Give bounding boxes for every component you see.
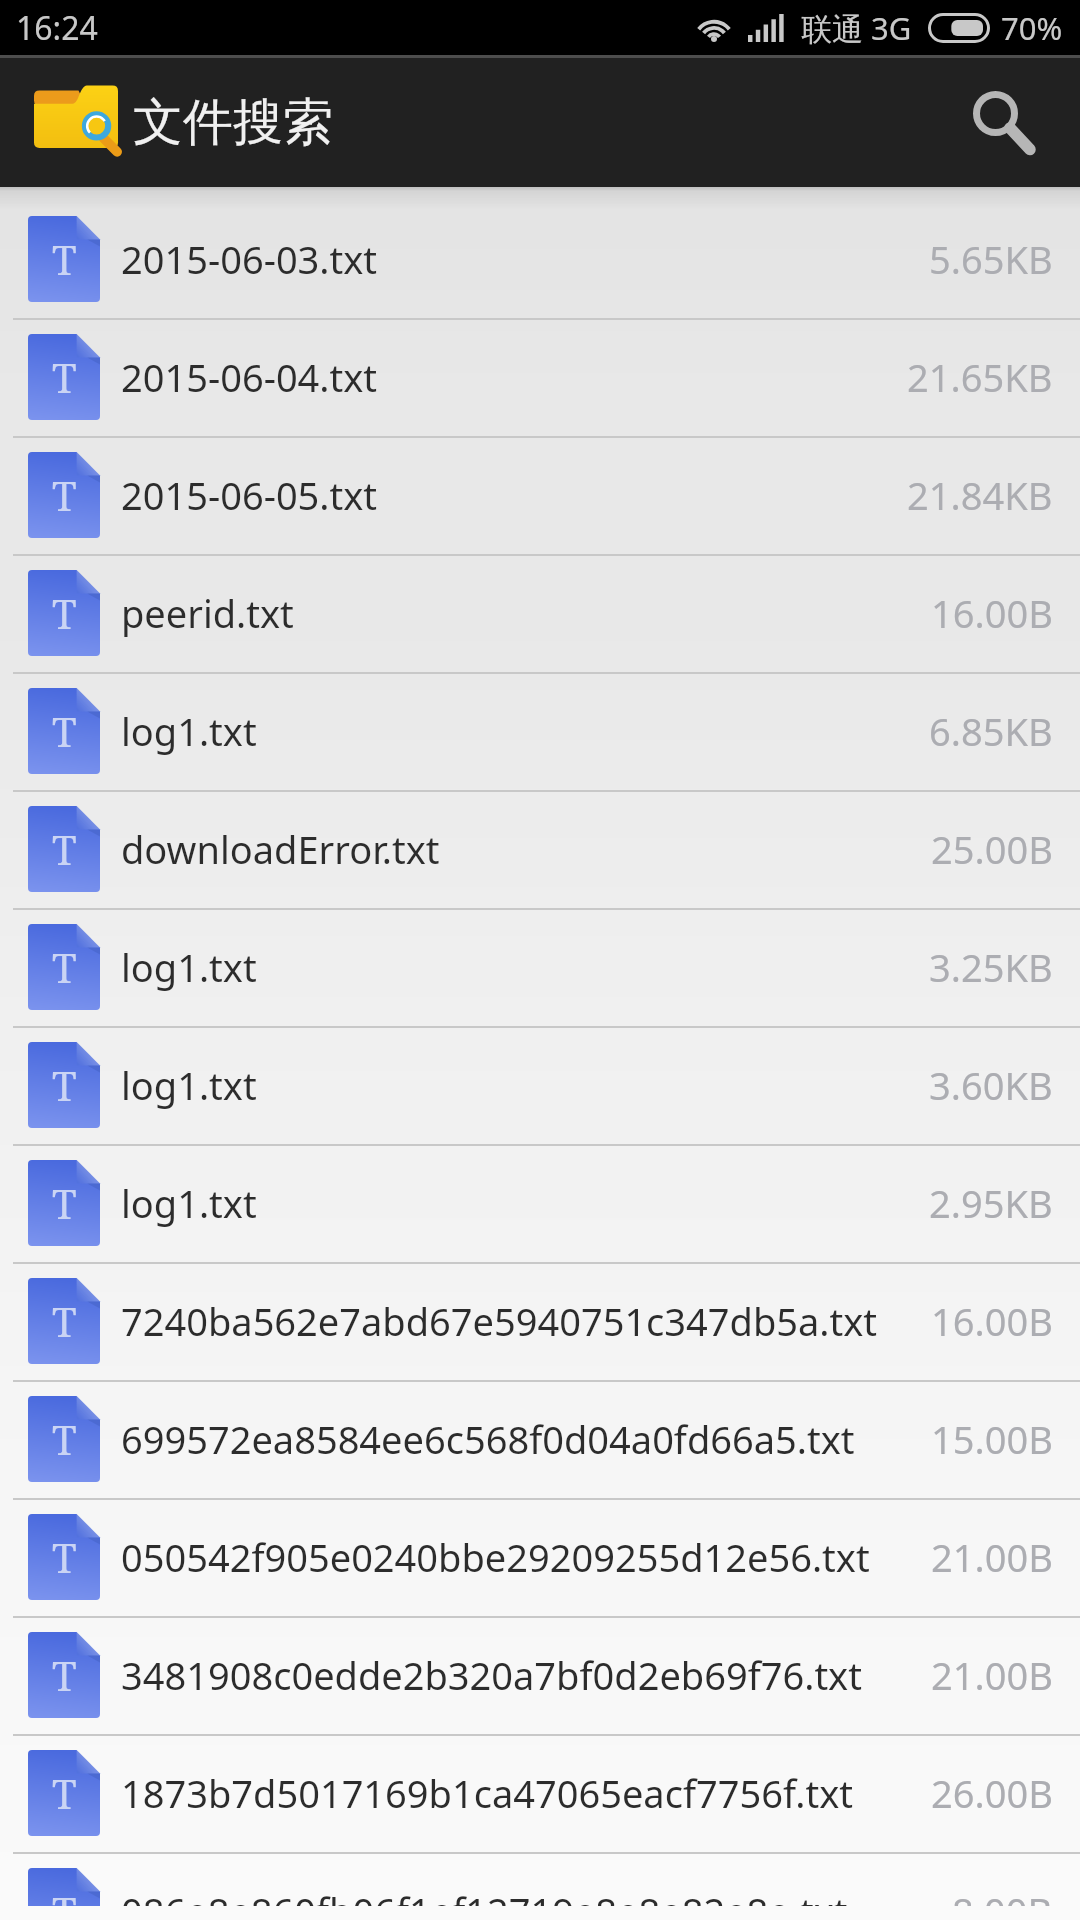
button[interactable]: T (0, 1026, 1080, 1144)
staticText: 16.00B (931, 587, 1053, 639)
staticText: 21.00B (931, 1531, 1053, 1583)
staticText: T (52, 1294, 77, 1348)
staticText: 16:24 (16, 6, 98, 50)
staticText: 2015-06-05.txt (121, 469, 891, 521)
staticText: T (52, 822, 77, 876)
staticText: T (52, 1766, 77, 1820)
staticText: log1.txt (121, 941, 913, 993)
button[interactable]: T (0, 1852, 1080, 1906)
button[interactable]: T (0, 1380, 1080, 1498)
staticText: log1.txt (121, 1177, 913, 1229)
button[interactable]: T (0, 1498, 1080, 1616)
staticText: T (52, 940, 77, 994)
staticText: 25.00B (931, 823, 1053, 875)
staticText: 2015-06-03.txt (121, 233, 913, 285)
button[interactable]: T (0, 908, 1080, 1026)
staticText: 联通 3G (801, 7, 912, 49)
staticText: downloadError.txt (121, 823, 915, 875)
staticText: 70% (1001, 7, 1063, 49)
staticText: T (52, 1530, 77, 1584)
staticText: 文件搜索 (133, 91, 333, 154)
button[interactable]: T (0, 318, 1080, 436)
staticText: 7240ba562e7abd67e5940751c347db5a.txt (121, 1295, 915, 1347)
staticText: 2.95KB (929, 1177, 1053, 1229)
staticText: log1.txt (121, 705, 913, 757)
button[interactable]: T (0, 554, 1080, 672)
button[interactable]: T (0, 1144, 1080, 1262)
staticText: T (52, 1884, 77, 1906)
button[interactable]: T (0, 200, 1080, 318)
staticText: T (52, 468, 77, 522)
button[interactable]: T (0, 790, 1080, 908)
staticText: T (52, 232, 77, 286)
staticText: 2015-06-04.txt (121, 351, 891, 403)
staticText: 5.65KB (929, 233, 1053, 285)
staticText: peerid.txt (121, 587, 915, 639)
staticText: T (52, 704, 77, 758)
staticText: 21.84KB (907, 469, 1053, 521)
staticText: T (52, 350, 77, 404)
staticText: 8.00B (952, 1885, 1053, 1906)
button[interactable]: T (0, 436, 1080, 554)
staticText: 3481908c0edde2b320a7bf0d2eb69f76.txt (121, 1649, 915, 1701)
staticText: T (52, 1176, 77, 1230)
staticText: log1.txt (121, 1059, 913, 1111)
staticText: 16.00B (931, 1295, 1053, 1347)
staticText: 26.00B (931, 1767, 1053, 1819)
staticText: 3.60KB (929, 1059, 1053, 1111)
staticText: 699572ea8584ee6c568f0d04a0fd66a5.txt (121, 1413, 915, 1465)
staticText: T (52, 586, 77, 640)
staticText: 086e8e860fb06f1ef12719e8e8e82e8e.txt (121, 1885, 936, 1906)
button[interactable]: T (0, 1262, 1080, 1380)
button[interactable]: T (0, 1616, 1080, 1734)
staticText: 050542f905e0240bbe29209255d12e56.txt (121, 1531, 915, 1583)
staticText: 3.25KB (929, 941, 1053, 993)
staticText: T (52, 1648, 77, 1702)
button[interactable]: Search (939, 58, 1068, 187)
button[interactable]: T (0, 1734, 1080, 1852)
button[interactable]: T (0, 672, 1080, 790)
staticText: 21.00B (931, 1649, 1053, 1701)
staticText: 21.65KB (907, 351, 1053, 403)
staticText: 1873b7d5017169b1ca47065eacf7756f.txt (121, 1767, 915, 1819)
staticText: 15.00B (931, 1413, 1053, 1465)
staticText: T (52, 1412, 77, 1466)
staticText: 6.85KB (929, 705, 1053, 757)
staticText: T (52, 1058, 77, 1112)
